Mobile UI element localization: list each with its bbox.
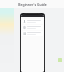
other: Item icon (23, 20, 26, 23)
button[interactable]: Item icon (22, 19, 43, 24)
staticText: Beginner's Guide (18, 2, 47, 7)
button[interactable]: Beginner's Guide (0, 0, 64, 8)
button[interactable]: Accent (58, 58, 62, 62)
button[interactable]: Item icon (20, 13, 45, 72)
button[interactable]: Item icon (22, 25, 43, 30)
button[interactable]: Item icon (22, 31, 43, 36)
other: Item icon (23, 26, 26, 29)
other: Item icon (23, 32, 26, 35)
